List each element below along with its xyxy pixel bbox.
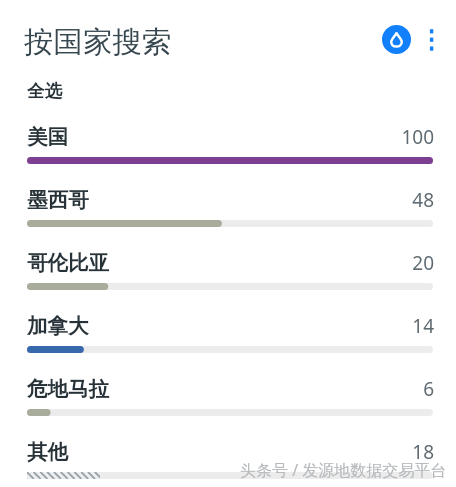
staticText: 100 [0,124,434,150]
button[interactable]: 全选 [20,74,76,104]
staticText: 14 [0,313,434,339]
button[interactable]: 美国 [0,120,456,171]
staticText: 18 [0,439,434,465]
staticText: 48 [0,187,434,213]
staticText: 其他 [27,439,68,465]
staticText: 美国 [27,124,68,150]
staticText: 危地马拉 [27,376,109,402]
staticText: 按国家搜索 [24,24,172,61]
button[interactable]: 墨西哥 [0,183,456,234]
staticText: 头条号 / 发源地数据交易平台 [240,459,447,481]
button[interactable]: 其他 [0,435,456,486]
button[interactable]: More options [419,22,444,57]
staticText: 6 [0,376,434,402]
button[interactable]: Water quality [382,25,411,54]
button[interactable]: 危地马拉 [0,372,456,423]
staticText: 墨西哥 [27,187,89,213]
staticText: 全选 [27,80,62,102]
staticText: 哥伦比亚 [27,250,109,276]
staticText: 20 [0,250,434,276]
staticText: 加拿大 [27,313,89,339]
button[interactable]: 加拿大 [0,309,456,360]
button[interactable]: 哥伦比亚 [0,246,456,297]
